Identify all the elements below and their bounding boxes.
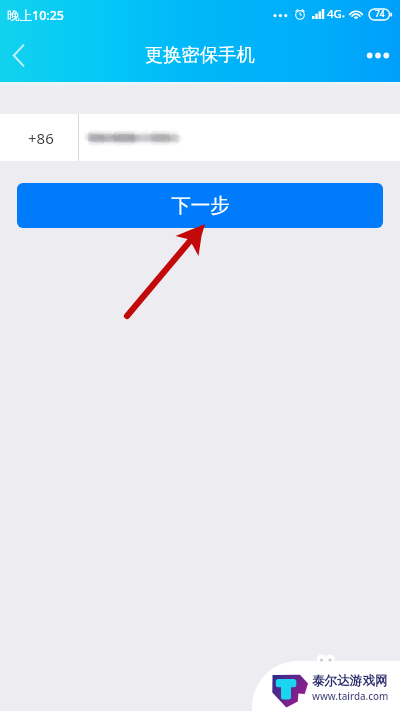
staticText: www.tairda.com bbox=[312, 690, 389, 703]
button[interactable] bbox=[79, 114, 400, 161]
staticText: +86 bbox=[28, 128, 54, 148]
staticText: 4G bbox=[327, 6, 342, 22]
button[interactable]: More options bbox=[356, 28, 400, 82]
staticText: 下一步 bbox=[171, 193, 230, 218]
staticText: 74 bbox=[375, 8, 385, 20]
staticText: 晚上10:25 bbox=[7, 7, 65, 24]
button[interactable]: 下一步 bbox=[17, 183, 383, 228]
staticText: 泰尔达游戏网 bbox=[312, 673, 388, 689]
staticText: 更换密保手机 bbox=[145, 43, 255, 66]
button[interactable]: +86 bbox=[0, 114, 78, 161]
button[interactable]: Back bbox=[0, 28, 36, 82]
